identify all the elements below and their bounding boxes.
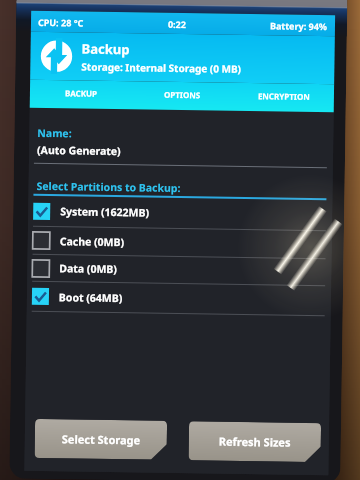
button[interactable]: OPTIONS — [132, 81, 233, 107]
staticText: OPTIONS — [164, 89, 201, 100]
button[interactable]: Select Storage — [34, 419, 167, 460]
button[interactable]: System (1622MB) — [33, 196, 326, 231]
staticText: Select Partitions to Backup: — [36, 179, 181, 195]
button[interactable]: Cache (0MB) — [33, 227, 326, 259]
other: TWRP — [40, 40, 73, 72]
button[interactable]: BACKUP — [30, 80, 132, 105]
button[interactable]: Refresh Sizes — [188, 421, 321, 462]
staticText: 0:22 — [168, 18, 186, 30]
button[interactable]: TWRP — [30, 32, 335, 84]
staticText: Data (0MB) — [59, 261, 117, 276]
staticText: BACKUP — [65, 87, 98, 99]
staticText: Battery: 94% — [270, 19, 328, 32]
staticText: Boot (64MB) — [59, 290, 123, 305]
staticText: Select Storage — [62, 431, 141, 447]
staticText: ENCRYPTION — [258, 90, 310, 102]
staticText: Backup — [81, 39, 130, 58]
staticText: Cache (0MB) — [60, 234, 125, 249]
staticText: CPU: 28 °C — [38, 16, 84, 29]
button[interactable]: Data (0MB) — [32, 255, 326, 286]
staticText: Refresh Sizes — [219, 434, 291, 450]
staticText: (Auto Generate) — [37, 143, 121, 158]
button[interactable]: ENCRYPTION — [233, 83, 334, 108]
staticText: System (1622MB) — [60, 204, 149, 219]
staticText: Storage: Internal Storage (0 MB) — [81, 59, 241, 76]
button[interactable]: Boot (64MB) — [32, 282, 325, 316]
staticText: Name: — [37, 126, 72, 140]
